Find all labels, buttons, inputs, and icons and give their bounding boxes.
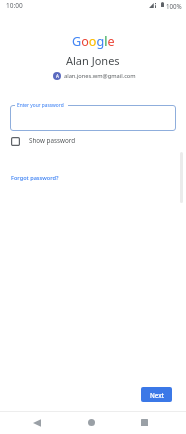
staticText: Next bbox=[150, 391, 164, 399]
button[interactable]: Home bbox=[79, 411, 103, 434]
staticText: Alan Jones bbox=[66, 53, 120, 68]
button[interactable]: Recent apps bbox=[132, 411, 156, 434]
staticText: 10:00 bbox=[6, 1, 23, 10]
button[interactable]: Back bbox=[25, 411, 49, 434]
staticText: Google bbox=[72, 33, 115, 50]
button[interactable]: A bbox=[52, 71, 137, 81]
staticText: A bbox=[56, 73, 59, 79]
staticText: Show password bbox=[29, 136, 76, 145]
staticText: Forgot password? bbox=[11, 174, 59, 182]
button[interactable] bbox=[10, 105, 176, 131]
button[interactable]: Forgot password? bbox=[8, 171, 62, 185]
staticText: 100% bbox=[166, 2, 182, 10]
staticText: alan.jones.wm@gmail.com bbox=[64, 72, 136, 80]
button[interactable]: Show password bbox=[8, 134, 79, 149]
staticText: Enter your password bbox=[17, 102, 64, 109]
button[interactable]: Next bbox=[141, 387, 172, 402]
